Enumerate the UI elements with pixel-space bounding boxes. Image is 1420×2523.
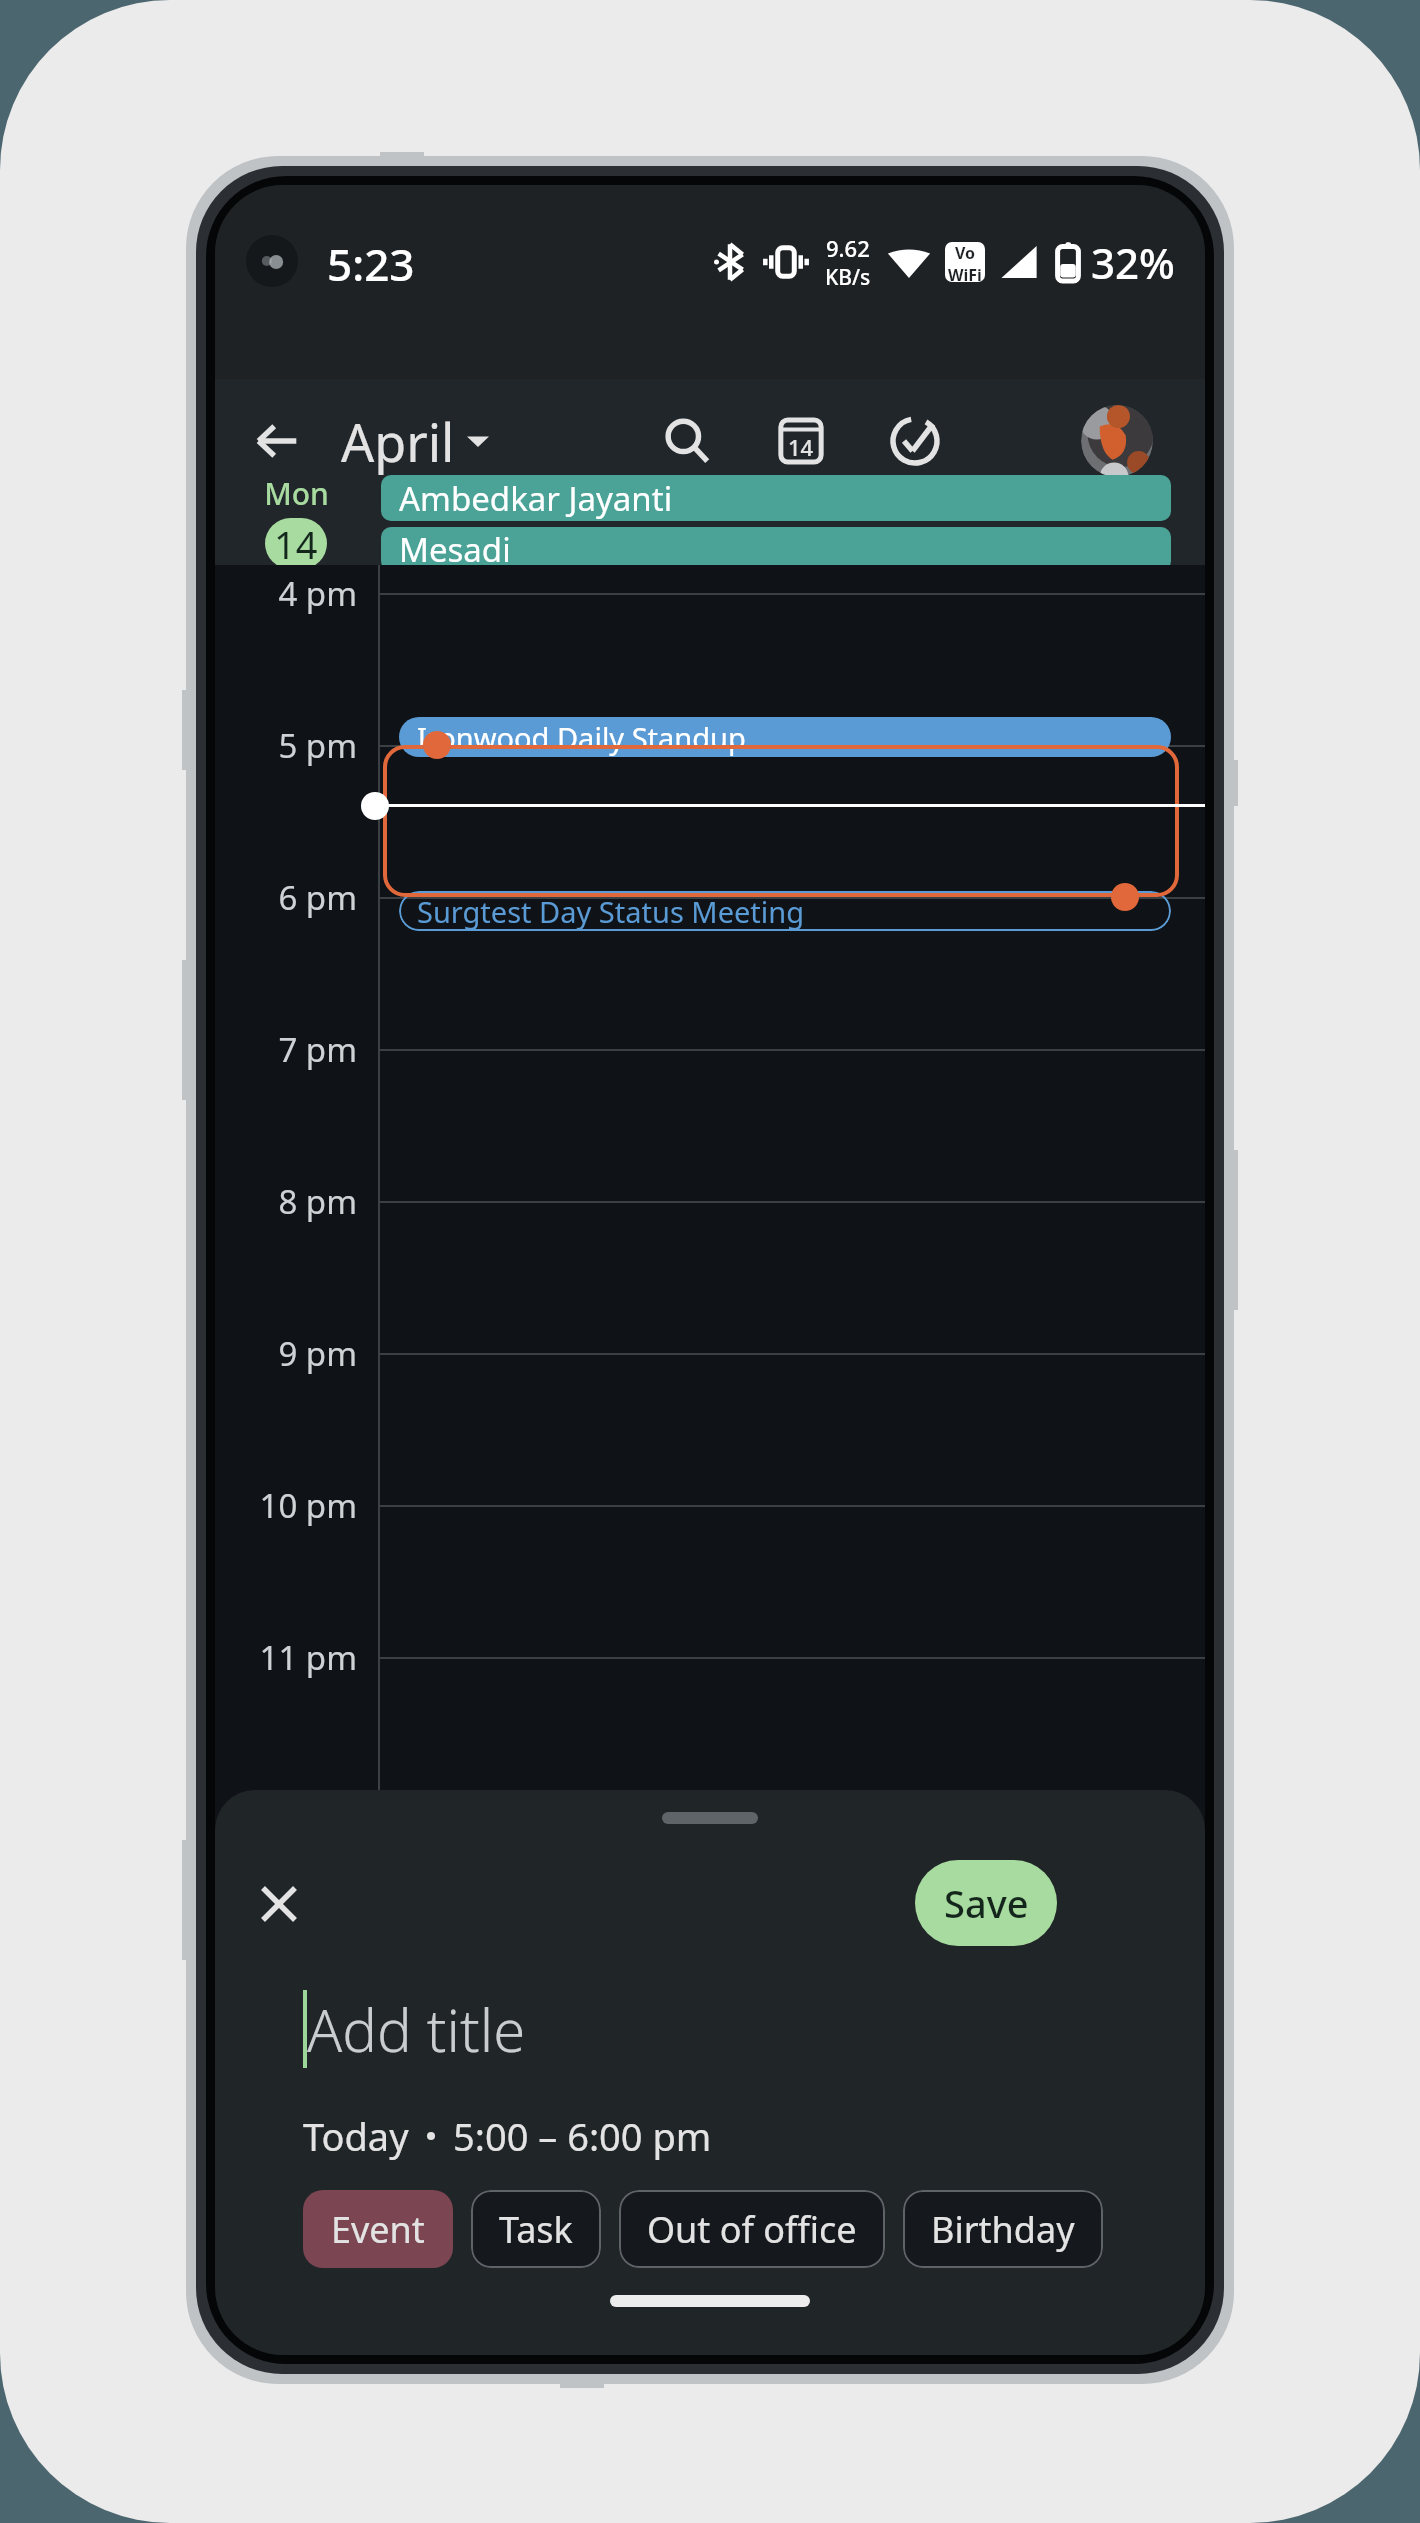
staticText: 5 pm <box>215 723 357 768</box>
staticText: Out of office <box>647 2205 857 2254</box>
button[interactable]: Mesadi <box>381 527 1171 571</box>
staticText: 14 <box>274 518 318 569</box>
button[interactable]: Task <box>471 2190 601 2268</box>
staticText: Birthday <box>931 2205 1075 2254</box>
button[interactable]: Birthday <box>903 2190 1103 2268</box>
button[interactable]: Add title <box>303 1986 526 2072</box>
staticText: 4 pm <box>215 571 357 616</box>
staticText: Save <box>944 1877 1029 1929</box>
button[interactable]: New event 5:00 to 6:00 pm <box>383 745 1179 897</box>
staticText: Mon <box>264 473 329 514</box>
staticText: 6 pm <box>215 875 357 920</box>
staticText: 9 pm <box>215 1331 357 1376</box>
staticText: Mesadi <box>399 527 511 571</box>
staticText: April <box>341 406 455 477</box>
staticText: 10 pm <box>215 1483 357 1528</box>
button[interactable]: Ironwood Daily Standup <box>399 717 1171 757</box>
staticText: 9.62 <box>826 233 870 263</box>
button[interactable]: Surgtest Day Status Meeting <box>399 891 1171 931</box>
button[interactable]: Go to today <box>761 401 841 481</box>
staticText: 8 pm <box>215 1179 357 1224</box>
staticText: Today <box>303 2110 409 2162</box>
staticText: 5:23 <box>327 234 415 294</box>
button[interactable]: Out of office <box>619 2190 885 2268</box>
staticText: Event <box>331 2205 425 2254</box>
staticText: Surgtest Day Status Meeting <box>417 892 805 931</box>
button[interactable]: Save <box>915 1860 1057 1946</box>
staticText: 5:00 – 6:00 pm <box>453 2110 712 2162</box>
staticText: 14 <box>788 432 814 462</box>
button[interactable]: April <box>337 405 493 477</box>
button[interactable]: Today <box>303 2108 712 2164</box>
button[interactable]: Account <box>1081 405 1153 477</box>
staticText: Ambedkar Jayanti <box>399 476 673 521</box>
button[interactable]: Search <box>647 401 727 481</box>
staticText: Ironwood Daily Standup <box>417 718 746 757</box>
button[interactable]: Event <box>303 2190 453 2268</box>
button[interactable]: Ambedkar Jayanti <box>381 475 1171 521</box>
staticText: Vo <box>955 242 976 264</box>
button[interactable]: Tasks <box>875 401 955 481</box>
staticText: 32% <box>1091 234 1175 291</box>
staticText: 7 pm <box>215 1027 357 1072</box>
staticText: Add title <box>307 1990 526 2069</box>
staticText: WiFi <box>948 264 982 282</box>
staticText: KB/s <box>825 263 871 291</box>
button[interactable]: Back <box>237 401 317 481</box>
button[interactable]: Close <box>237 1862 321 1946</box>
staticText: Task <box>499 2205 573 2254</box>
staticText: 11 pm <box>215 1635 357 1680</box>
